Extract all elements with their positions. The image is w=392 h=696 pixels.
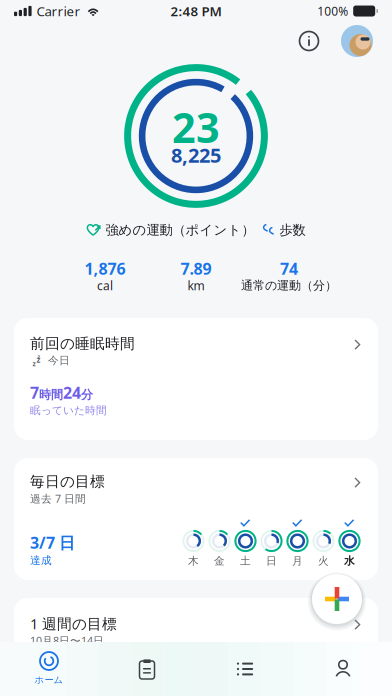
staticText: 木 bbox=[188, 554, 199, 567]
staticText: 通常の運動（分） bbox=[241, 278, 337, 293]
staticText: 過去 7 日間 bbox=[30, 491, 86, 506]
staticText: 1,876 bbox=[84, 258, 125, 279]
staticText: z bbox=[32, 359, 35, 368]
staticText: 分 bbox=[81, 387, 93, 402]
button[interactable]: Journal bbox=[98, 642, 196, 696]
staticText: 23 bbox=[172, 100, 220, 154]
staticText: 24 bbox=[63, 382, 81, 403]
staticText: 7 bbox=[30, 382, 39, 403]
button[interactable]: 前回の睡眠時間 bbox=[0, 318, 392, 440]
staticText: 火 bbox=[318, 554, 329, 567]
staticText: cal bbox=[97, 277, 113, 293]
button[interactable]: 毎日の目標 bbox=[0, 458, 392, 580]
button[interactable]: Profile bbox=[294, 642, 392, 696]
staticText: 強めの運動（ポイント） bbox=[105, 222, 254, 238]
staticText: 眠っていた時間 bbox=[30, 404, 107, 417]
button[interactable]: Profile bbox=[338, 22, 376, 60]
staticText: 日 bbox=[266, 554, 277, 567]
staticText: 歩数 bbox=[279, 222, 305, 238]
staticText: km bbox=[187, 277, 204, 293]
button[interactable]: Add activity bbox=[306, 568, 368, 630]
staticText: 74 bbox=[280, 258, 298, 279]
staticText: 水 bbox=[344, 554, 355, 567]
staticText: 金 bbox=[214, 554, 225, 567]
staticText: 7.89 bbox=[180, 258, 211, 279]
staticText: 1 週間の目標 bbox=[30, 614, 117, 633]
staticText: 毎日の目標 bbox=[30, 472, 105, 490]
staticText: 3/7 日 bbox=[30, 532, 75, 553]
staticText: z bbox=[36, 354, 40, 365]
staticText: 8,225 bbox=[171, 142, 221, 168]
staticText: 2:48 PM bbox=[170, 2, 221, 20]
staticText: Carrier bbox=[37, 2, 81, 20]
button[interactable]: Browse bbox=[196, 642, 294, 696]
staticText: z bbox=[37, 353, 40, 360]
button[interactable]: 1 週間の目標 bbox=[0, 598, 392, 642]
staticText: 今日 bbox=[48, 354, 70, 367]
staticText: ホーム bbox=[34, 674, 63, 686]
staticText: 達成 bbox=[30, 554, 52, 567]
button[interactable]: Information bbox=[290, 22, 328, 60]
staticText: 前回の睡眠時間 bbox=[30, 334, 135, 352]
staticText: 土 bbox=[240, 554, 251, 567]
staticText: 月 bbox=[292, 554, 303, 567]
staticText: 10月8日〜14日 bbox=[30, 633, 104, 648]
button[interactable]: ホーム bbox=[0, 642, 98, 696]
staticText: 100% bbox=[317, 3, 348, 19]
staticText: 時間 bbox=[39, 387, 63, 402]
